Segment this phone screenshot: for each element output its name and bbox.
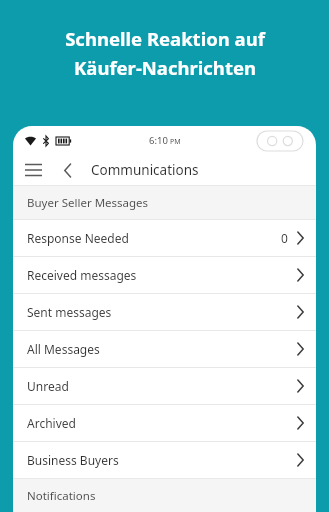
button[interactable]: Unread xyxy=(13,368,316,404)
staticText: 6:10 xyxy=(149,134,168,147)
button[interactable]: Back xyxy=(55,157,81,183)
staticText: Buyer Seller Messages xyxy=(27,195,149,211)
staticText: Käufer-Nachrichten xyxy=(74,55,256,80)
staticText: PM xyxy=(170,137,181,147)
staticText: Unread xyxy=(27,378,69,394)
staticText: Archived xyxy=(27,415,76,431)
staticText: Response Needed xyxy=(27,230,129,246)
button[interactable]: All Messages xyxy=(13,331,316,367)
button[interactable]: Received messages xyxy=(13,257,316,293)
staticText: Communications xyxy=(91,161,199,179)
button[interactable]: Open navigation menu xyxy=(19,156,47,184)
button[interactable]: Business Buyers xyxy=(13,442,316,478)
staticText: Notifications xyxy=(27,488,96,504)
staticText: Sent messages xyxy=(27,304,112,320)
button[interactable]: Response Needed xyxy=(13,220,316,256)
staticText: All Messages xyxy=(27,341,100,357)
staticText: 0 xyxy=(281,230,288,246)
staticText: Received messages xyxy=(27,267,137,283)
button[interactable]: Sent messages xyxy=(13,294,316,330)
button[interactable]: Archived xyxy=(13,405,316,441)
staticText: Schnelle Reaktion auf xyxy=(65,26,265,51)
staticText: Business Buyers xyxy=(27,452,119,468)
